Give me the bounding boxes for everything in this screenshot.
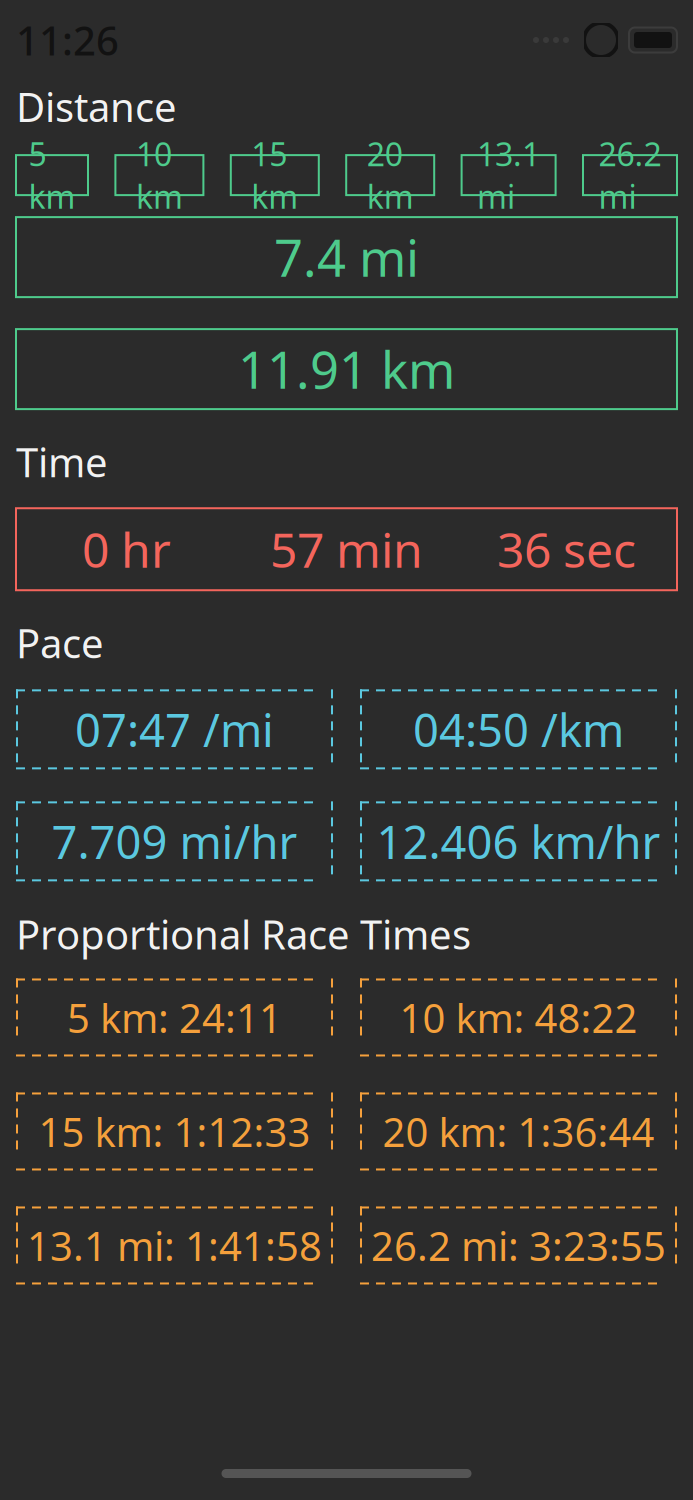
staticText: 07:47 /mi — [75, 699, 274, 759]
staticText: 20 km: 1:36:44 — [382, 1105, 654, 1158]
button[interactable]: 07:47 /mi — [16, 689, 333, 769]
button[interactable]: 20 km — [346, 155, 434, 195]
button[interactable]: 13.1 mi: 1:41:58 — [16, 1206, 333, 1284]
button[interactable]: 04:50 /km — [360, 689, 677, 769]
button[interactable]: 26.2 mi — [583, 155, 677, 195]
button[interactable]: 12.406 km/hr — [360, 801, 677, 881]
button[interactable]: 7.4 mi — [16, 217, 677, 297]
button[interactable]: 20 km: 1:36:44 — [360, 1092, 677, 1170]
staticText: 13.1 mi — [477, 133, 540, 218]
staticText: 57 min — [270, 517, 423, 581]
staticText: 10 km: 48:22 — [399, 991, 637, 1044]
staticText: Pace — [16, 616, 104, 669]
button[interactable]: 15 km — [231, 155, 319, 195]
staticText: 10 km — [136, 133, 183, 218]
staticText: 20 km — [367, 133, 414, 218]
button[interactable]: 10 km — [115, 155, 203, 195]
button[interactable]: 11.91 km — [16, 329, 677, 409]
staticText: 15 km — [251, 133, 298, 218]
staticText: 0 hr — [82, 517, 171, 581]
staticText: 13.1 mi: 1:41:58 — [27, 1219, 322, 1272]
button[interactable]: 26.2 mi: 3:23:55 — [360, 1206, 677, 1284]
staticText: 12.406 km/hr — [376, 811, 660, 871]
staticText: 7.4 mi — [274, 223, 419, 291]
staticText: 11:26 — [16, 13, 119, 66]
staticText: 26.2 mi — [598, 133, 661, 218]
staticText: 5 km — [28, 133, 75, 218]
button[interactable]: 5 km: 24:11 — [16, 978, 333, 1056]
staticText: 7.709 mi/hr — [51, 811, 297, 871]
staticText: 15 km: 1:12:33 — [38, 1105, 310, 1158]
button[interactable]: 5 km — [16, 155, 88, 195]
staticText: 26.2 mi: 3:23:55 — [371, 1219, 666, 1272]
button[interactable]: 10 km: 48:22 — [360, 978, 677, 1056]
button[interactable]: 13.1 mi — [462, 155, 556, 195]
staticText: 36 sec — [497, 517, 636, 581]
staticText: Distance — [16, 80, 177, 133]
button[interactable]: 15 km: 1:12:33 — [16, 1092, 333, 1170]
staticText: 04:50 /km — [413, 699, 624, 759]
button[interactable]: 7.709 mi/hr — [16, 801, 333, 881]
staticText: 5 km: 24:11 — [67, 991, 282, 1044]
staticText: Time — [16, 435, 108, 488]
staticText: 11.91 km — [238, 335, 455, 403]
staticText: Proportional Race Times — [16, 907, 471, 960]
button[interactable]: 0 hr — [16, 508, 677, 590]
